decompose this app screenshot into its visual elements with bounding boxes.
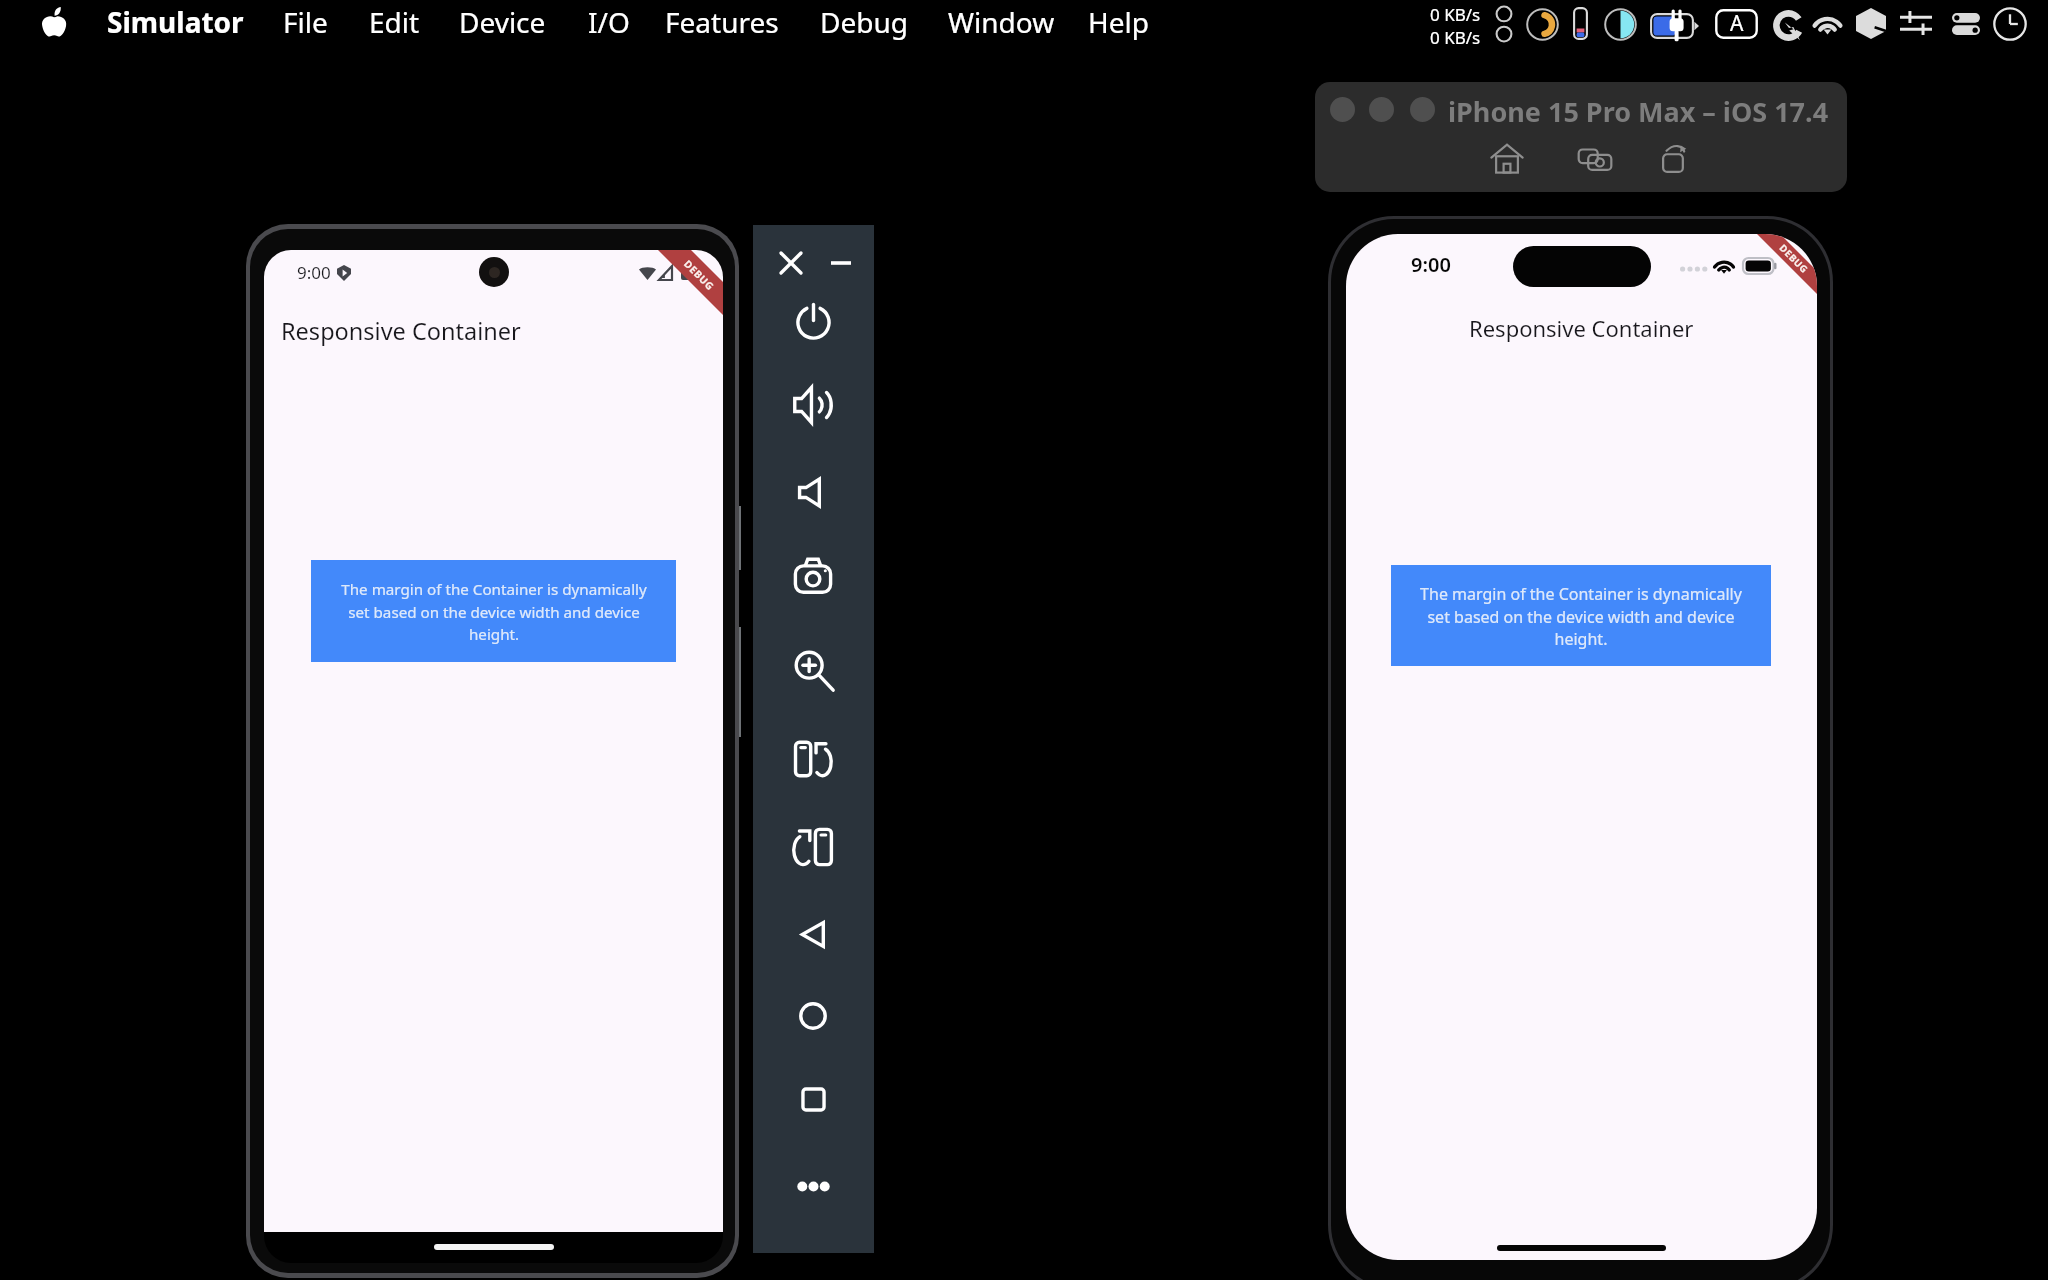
button[interactable]: Volume up [779, 371, 847, 439]
staticText: Debug [820, 3, 908, 41]
staticText: 9:00 [1411, 251, 1451, 278]
staticText: I/O [588, 3, 630, 41]
staticText: A [1730, 9, 1744, 38]
button[interactable]: Power [779, 288, 847, 356]
staticText: 0 KB/s [1430, 3, 1481, 26]
button[interactable]: The margin of the Container is dynamical… [311, 560, 676, 662]
staticText: DEBUG [681, 257, 718, 294]
button[interactable]: Back [779, 900, 847, 968]
staticText: Window [948, 3, 1055, 41]
staticText: Responsive Container [281, 315, 521, 347]
staticText: Simulator [107, 3, 244, 41]
staticText: 9:00 [297, 261, 331, 284]
button[interactable]: Home [779, 982, 847, 1050]
staticText: Responsive Container [1469, 313, 1694, 343]
button[interactable]: Overview [779, 1065, 847, 1133]
button[interactable]: Zoom [779, 636, 847, 704]
button[interactable]: Debug [808, 0, 920, 48]
staticText: The margin of the Container is dynamical… [1420, 583, 1742, 649]
button[interactable]: Device [447, 0, 558, 48]
button[interactable]: The margin of the Container is dynamical… [1391, 565, 1771, 666]
button[interactable]: Volume down [779, 458, 847, 526]
staticText: Help [1088, 3, 1149, 41]
button[interactable]: Features [653, 0, 791, 48]
button[interactable]: Window control 2 [1410, 97, 1435, 122]
staticText: Edit [369, 3, 420, 41]
staticText: Device [459, 3, 546, 41]
button[interactable]: Simulator [95, 0, 256, 48]
button[interactable]: Rotate [1652, 137, 1696, 181]
button[interactable]: Rotate right [779, 813, 847, 881]
button[interactable]: Window control 0 [1330, 97, 1355, 122]
button[interactable]: Window [936, 0, 1067, 48]
button[interactable]: Home [1485, 137, 1529, 181]
button[interactable]: Screenshot [1573, 137, 1617, 181]
button[interactable]: More [779, 1152, 847, 1220]
button[interactable]: Take screenshot [779, 542, 847, 610]
button[interactable]: Window control 1 [1369, 97, 1394, 122]
staticText: 0 KB/s [1430, 26, 1481, 49]
staticText: iPhone 15 Pro Max – iOS 17.4 [1448, 93, 1829, 130]
button[interactable]: Help [1076, 0, 1161, 48]
button[interactable]: Rotate left [779, 725, 847, 793]
button[interactable]: Edit [357, 0, 432, 48]
staticText: File [283, 3, 328, 41]
button[interactable]: I/O [576, 0, 642, 48]
staticText: The margin of the Container is dynamical… [341, 579, 647, 644]
button[interactable]: Close [771, 243, 811, 283]
button[interactable]: Minimize [821, 243, 861, 283]
button[interactable]: File [271, 0, 340, 48]
staticText: DEBUG [1776, 241, 1811, 276]
staticText: Features [665, 3, 779, 41]
button[interactable]: Apple menu [40, 7, 68, 37]
